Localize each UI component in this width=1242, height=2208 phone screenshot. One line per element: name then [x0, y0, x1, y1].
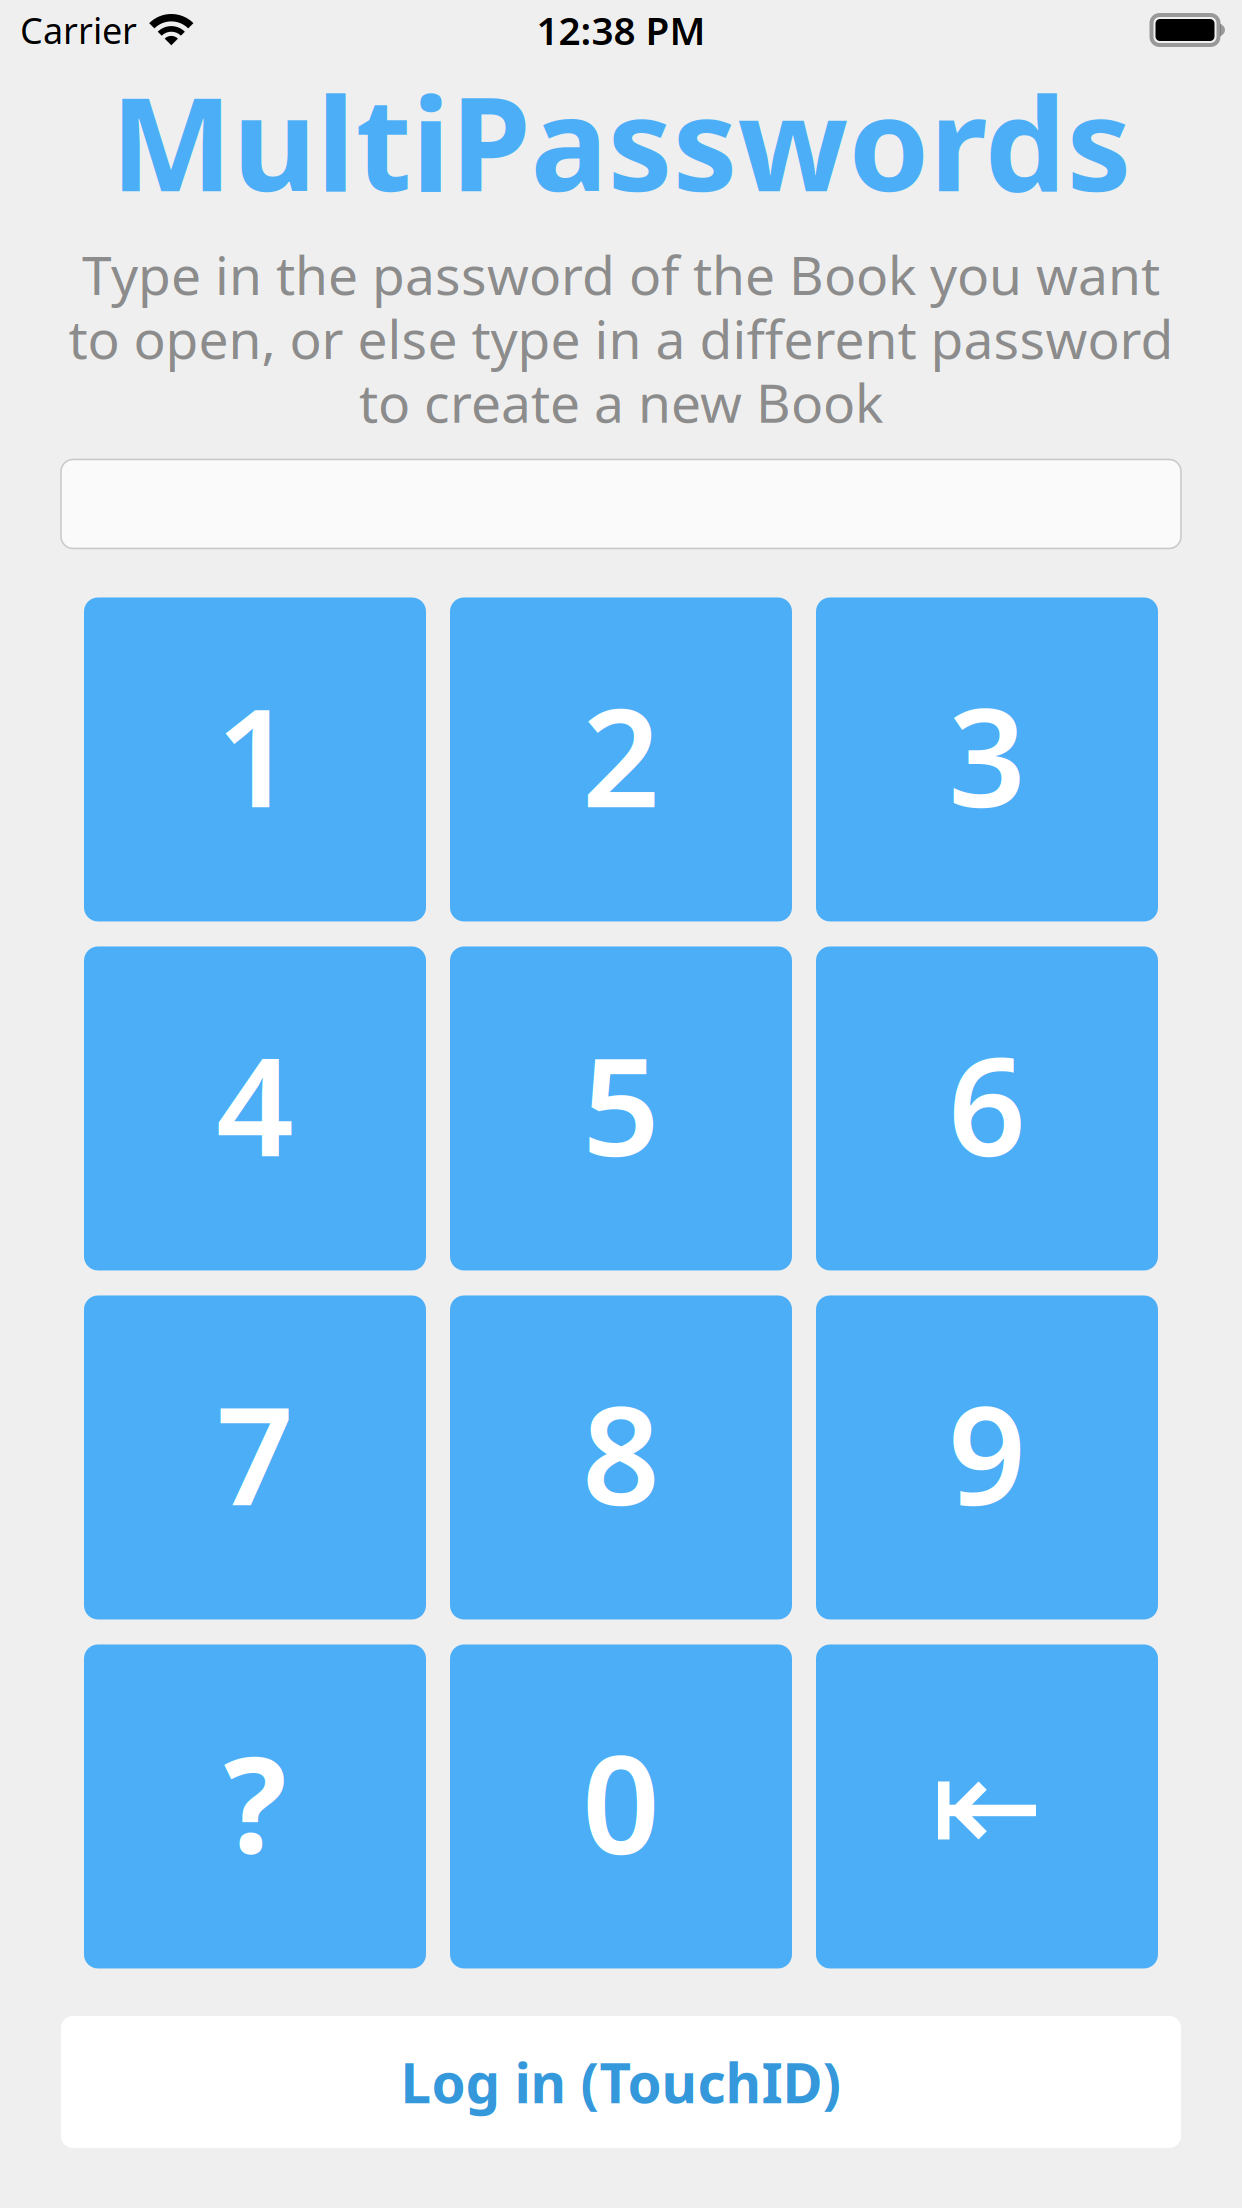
staticText: 8 [582, 1362, 660, 1543]
staticText: 9 [948, 1362, 1026, 1543]
button[interactable]: Delete [816, 1644, 1158, 1968]
staticText: Carrier [20, 6, 137, 54]
button[interactable]: Log in (TouchID) [61, 2016, 1181, 2148]
button[interactable]: 9 [816, 1295, 1158, 1619]
staticText: 5 [582, 1013, 660, 1194]
staticText: Type in the password of the Book you wan… [82, 239, 1160, 310]
button[interactable]: 6 [816, 946, 1158, 1270]
button[interactable]: 3 [816, 597, 1158, 921]
staticText: 12:38 PM [536, 4, 705, 56]
staticText: 0 [582, 1711, 660, 1892]
button[interactable]: 8 [450, 1295, 792, 1619]
button[interactable]: 5 [450, 946, 792, 1270]
button[interactable]: 2 [450, 597, 792, 921]
staticText: 7 [216, 1362, 294, 1543]
button[interactable]: 7 [84, 1295, 426, 1619]
staticText: to create a new Book [359, 367, 883, 437]
staticText: 6 [948, 1013, 1026, 1194]
staticText: Log in (TouchID) [400, 2046, 841, 2118]
staticText: ? [223, 1714, 286, 1889]
staticText: to open, or else type in a different pas… [68, 303, 1173, 374]
staticText: 2 [582, 664, 660, 845]
staticText: 3 [948, 664, 1026, 845]
button[interactable]: 4 [84, 946, 426, 1270]
staticText: MultiPasswords [110, 55, 1131, 227]
staticText: 1 [216, 664, 294, 845]
button[interactable]: 1 [84, 597, 426, 921]
button[interactable]: 0 [450, 1644, 792, 1968]
button[interactable]: ? [84, 1644, 426, 1968]
staticText: 4 [216, 1013, 294, 1194]
